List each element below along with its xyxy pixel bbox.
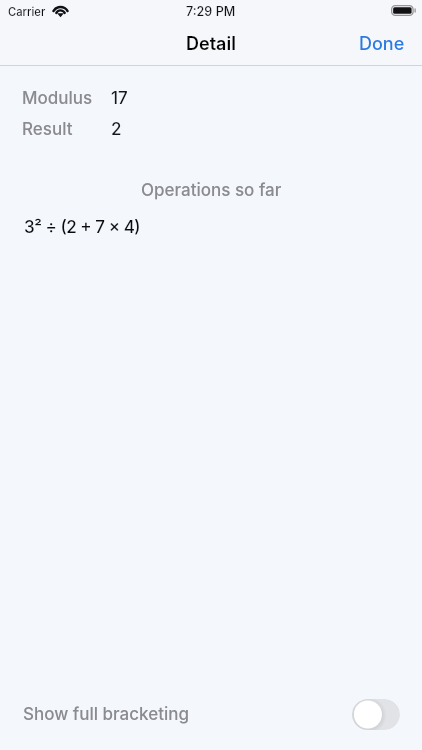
- staticText: Result: [22, 119, 111, 140]
- staticText: Detail: [186, 33, 236, 55]
- staticText: 2: [111, 119, 122, 140]
- staticText: Show full bracketing: [23, 704, 190, 725]
- staticText: Carrier: [8, 5, 46, 19]
- button[interactable]: Done: [340, 25, 422, 63]
- staticText: 17: [111, 88, 128, 109]
- staticText: Done: [359, 33, 405, 55]
- staticText: 7:29 PM: [186, 4, 236, 19]
- button[interactable]: Show full bracketing switch, off: [352, 699, 400, 730]
- staticText: Modulus: [22, 88, 111, 109]
- staticText: 3² ÷ (2 + 7 × 4): [24, 217, 141, 238]
- button[interactable]: Show full bracketing: [0, 688, 422, 740]
- staticText: Operations so far: [141, 180, 282, 201]
